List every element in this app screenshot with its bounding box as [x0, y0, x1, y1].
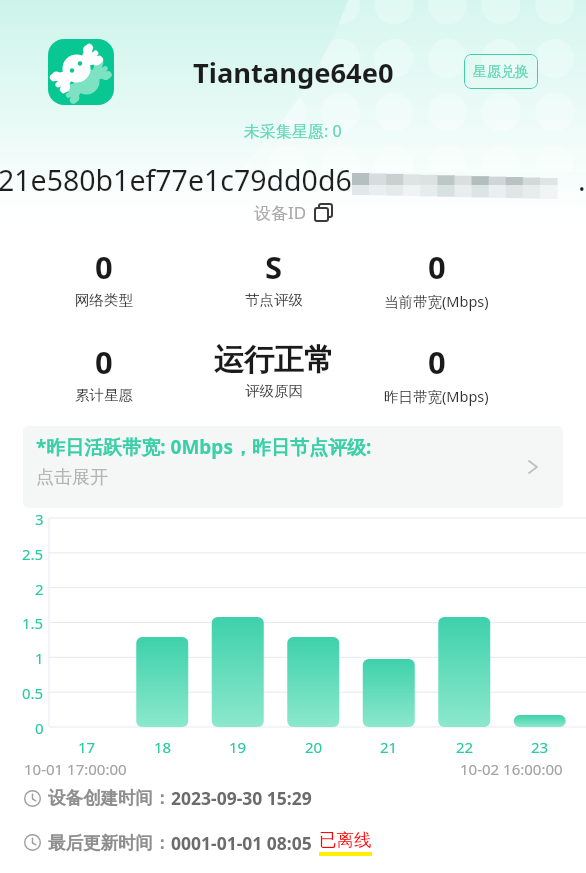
- staticText: 设备创建时间：: [48, 787, 171, 809]
- staticText: 20: [305, 737, 323, 757]
- staticText: 网络类型: [75, 291, 133, 309]
- staticText: 2023-09-30 15:29: [171, 786, 312, 810]
- staticText: .: [578, 161, 586, 200]
- staticText: 3: [35, 509, 44, 527]
- staticText: 0: [428, 341, 446, 383]
- staticText: 21e580b1ef77e1c79dd0d6: [0, 161, 352, 200]
- staticText: 21: [380, 737, 398, 757]
- staticText: 当前带宽(Mbps): [384, 291, 489, 311]
- button[interactable]: *昨日活跃带宽: 0Mbps，昨日节点评级:: [23, 426, 563, 508]
- button[interactable]: 设备ID: [252, 200, 335, 225]
- staticText: Tiantange64e0: [193, 54, 394, 91]
- staticText: S: [265, 246, 283, 288]
- staticText: 17: [78, 737, 96, 757]
- staticText: 19: [229, 737, 247, 757]
- staticText: 10-01 17:00:00: [24, 759, 127, 779]
- staticText: 0001-01-01 08:05: [171, 831, 312, 855]
- staticText: 累计星愿: [75, 386, 133, 404]
- other: Copy device ID: [314, 203, 333, 222]
- button[interactable]: 星愿兑换: [464, 54, 538, 89]
- staticText: 0: [35, 718, 44, 736]
- staticText: 23: [531, 737, 549, 757]
- staticText: 1: [35, 648, 44, 666]
- staticText: 2: [35, 579, 44, 597]
- staticText: 已离线: [319, 829, 372, 851]
- staticText: 10-02 16:00:00: [460, 759, 563, 779]
- staticText: 点击展开: [36, 466, 108, 489]
- staticText: 设备ID: [254, 201, 307, 224]
- staticText: 评级原因: [245, 382, 303, 400]
- staticText: 0: [95, 341, 113, 383]
- button[interactable]: App icon: [48, 39, 114, 105]
- staticText: 0.5: [22, 683, 44, 701]
- staticText: 最后更新时间：: [48, 832, 171, 854]
- staticText: 0: [95, 246, 113, 288]
- staticText: 1.5: [22, 613, 44, 631]
- staticText: 星愿兑换: [473, 63, 529, 81]
- staticText: 18: [154, 737, 172, 757]
- staticText: 2.5: [22, 544, 44, 562]
- staticText: 22: [456, 737, 474, 757]
- staticText: 昨日带宽(Mbps): [384, 386, 489, 406]
- staticText: 0: [428, 246, 446, 288]
- staticText: *昨日活跃带宽: 0Mbps，昨日节点评级:: [36, 434, 372, 460]
- staticText: 运行正常: [214, 341, 334, 379]
- staticText: 未采集星愿: 0: [244, 120, 342, 142]
- staticText: 节点评级: [245, 291, 303, 309]
